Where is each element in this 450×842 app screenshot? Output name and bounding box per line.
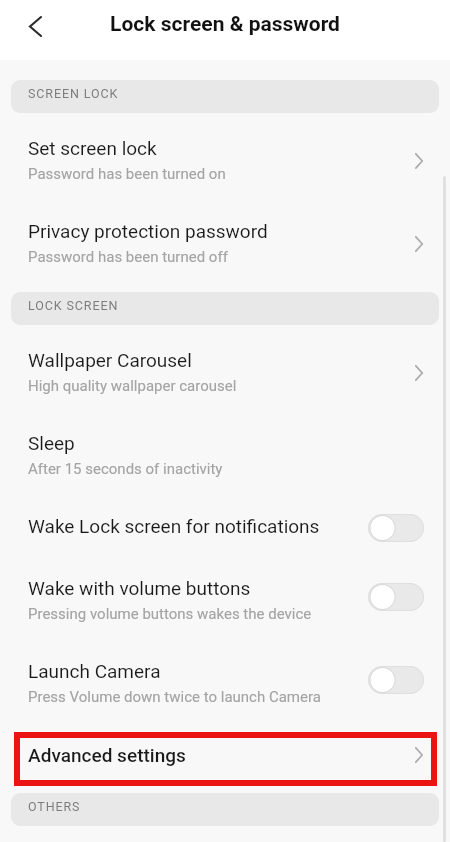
- staticText: Launch Camera: [28, 660, 161, 682]
- button[interactable]: Privacy protection password: [0, 196, 450, 279]
- staticText: Password has been turned on: [28, 165, 226, 183]
- staticText: Lock screen & password: [110, 12, 340, 37]
- staticText: After 15 seconds of inactivity: [28, 460, 223, 478]
- staticText: Set screen lock: [28, 137, 157, 159]
- staticText: LOCK SCREEN: [28, 298, 119, 313]
- staticText: Pressing volume buttons wakes the device: [28, 605, 312, 623]
- button[interactable]: Advanced settings: [0, 719, 450, 791]
- button[interactable]: Launch Camera: [0, 636, 450, 719]
- button[interactable]: [368, 583, 424, 611]
- staticText: Wake with volume buttons: [28, 577, 251, 599]
- staticText: SCREEN LOCK: [28, 86, 119, 101]
- button[interactable]: Wake with volume buttons: [0, 553, 450, 636]
- staticText: OTHERS: [28, 799, 81, 814]
- button[interactable]: Wake Lock screen for notifications: [0, 491, 450, 553]
- staticText: Privacy protection password: [28, 220, 268, 242]
- staticText: Wake Lock screen for notifications: [28, 515, 320, 537]
- staticText: Wallpaper Carousel: [28, 349, 192, 371]
- staticText: Advanced settings: [28, 744, 186, 766]
- button[interactable]: [368, 514, 424, 542]
- button[interactable]: Set screen lock: [0, 113, 450, 196]
- button[interactable]: Wallpaper Carousel: [0, 325, 450, 408]
- button[interactable]: [29, 12, 57, 40]
- staticText: Sleep: [28, 432, 75, 454]
- staticText: High quality wallpaper carousel: [28, 377, 237, 395]
- staticText: Password has been turned off: [28, 248, 228, 266]
- staticText: Press Volume down twice to launch Camera: [28, 688, 321, 706]
- button[interactable]: Sleep: [0, 408, 450, 491]
- button[interactable]: [368, 666, 424, 694]
